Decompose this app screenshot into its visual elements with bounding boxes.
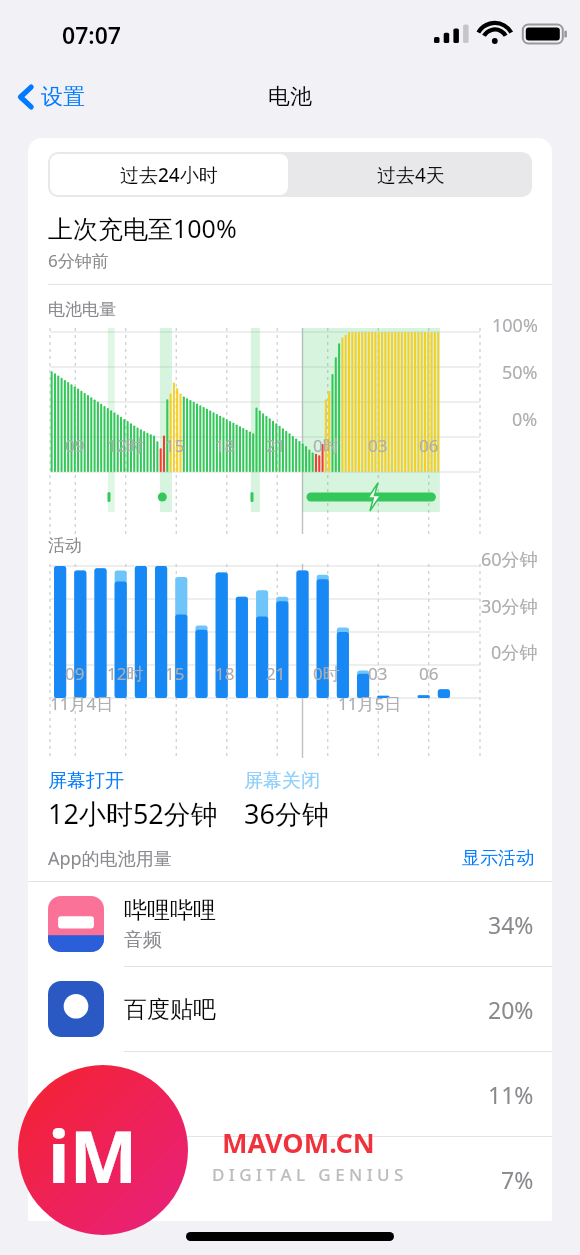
staticText: 34% [488, 909, 534, 940]
staticText: 电池电量 [48, 299, 116, 320]
staticText: 09 [65, 662, 85, 685]
staticText: 显示活动 [462, 847, 534, 870]
staticText: D I G I T A L G E N I U S [212, 1163, 404, 1186]
staticText: 06 [419, 434, 439, 457]
staticText: 哔哩哔哩 [124, 896, 216, 925]
button[interactable]: 屏幕打开 [48, 769, 218, 832]
staticText: 50% [502, 360, 538, 385]
staticText: 过去24小时 [120, 162, 218, 188]
staticText: 斗鱼 [124, 1165, 170, 1194]
staticText: 6分钟前 [48, 249, 109, 272]
button[interactable]: 哔哩哔哩 [28, 882, 552, 966]
staticText: 12时 [107, 434, 144, 457]
staticText: 07:07 [62, 19, 121, 50]
button[interactable]: 百度贴吧 [28, 967, 552, 1051]
button[interactable]: 显示活动 [462, 847, 534, 870]
button[interactable]: 屏幕关闭 [244, 769, 329, 832]
staticText: 36分钟 [244, 795, 329, 832]
button[interactable]: 过去24小时 [50, 154, 288, 195]
staticText: 15 [165, 434, 185, 457]
staticText: 18 [215, 434, 235, 457]
staticText: 过去4天 [377, 162, 445, 188]
staticText: 百度贴吧 [124, 995, 216, 1024]
staticText: 0分钟 [491, 640, 538, 665]
staticText: App的电池用量 [48, 846, 172, 871]
staticText: 100% [492, 313, 538, 338]
staticText: 09 [65, 434, 85, 457]
staticText: 0时 [313, 434, 340, 457]
staticText: 15 [165, 662, 185, 685]
staticText: 12时 [107, 662, 144, 685]
staticText: 电池 [268, 83, 312, 111]
staticText: 21 [266, 662, 286, 685]
staticText: 0时 [313, 662, 340, 685]
staticText: 18 [215, 662, 235, 685]
staticText: 0% [512, 407, 538, 432]
staticText: 设置 [41, 83, 85, 111]
staticText: 03 [368, 434, 388, 457]
button[interactable]: 斗鱼 [28, 1137, 552, 1221]
staticText: 屏幕打开 [48, 769, 124, 793]
button[interactable]: 过去4天 [290, 152, 532, 197]
staticText: 06 [419, 662, 439, 685]
staticText: 活动 [48, 535, 82, 556]
staticText: 60分钟 [481, 547, 538, 572]
staticText: MAVOM.CN [222, 1124, 375, 1161]
button[interactable]: 11% [28, 1052, 552, 1136]
staticText: 21 [266, 434, 286, 457]
staticText: 11月5日 [338, 692, 402, 715]
staticText: 上次充电至100% [48, 211, 237, 245]
staticText: 音频 [124, 928, 162, 952]
button[interactable]: 设置 [12, 77, 91, 117]
staticText: 03 [368, 662, 388, 685]
staticText: 屏幕关闭 [244, 769, 320, 793]
staticText: 11% [488, 1079, 534, 1110]
staticText: 11月4日 [50, 692, 114, 715]
staticText: 12小时52分钟 [48, 795, 218, 832]
staticText: 20% [488, 994, 534, 1025]
staticText: 30分钟 [481, 594, 538, 619]
staticText: iM [48, 1106, 138, 1204]
staticText: 7% [501, 1164, 534, 1195]
